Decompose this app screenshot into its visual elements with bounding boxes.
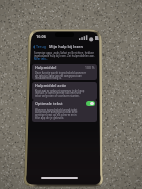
staticText: 16:06 bbox=[36, 34, 46, 39]
staticText: Wanneer ingeschakeld wordt tekst bbox=[35, 108, 78, 111]
staticText: de tekst in Safari wordt aangepast aan bbox=[35, 74, 82, 77]
staticText: Deze functie wordt ingeschakeld wanneer bbox=[35, 71, 87, 74]
staticText: automatisch aangepast zodat deze bbox=[35, 110, 78, 113]
staticText: Mijn hulp bij lezen bbox=[49, 44, 83, 49]
staticText: Kiest wat er gebeurt wanneer je de knop bbox=[35, 89, 85, 92]
staticText: indrukt. Je kunt hiermee ook heel snel bbox=[35, 91, 82, 94]
staticText: Optimale tekst bbox=[35, 101, 63, 106]
staticText: Sommige apps, zoals Safari en Berichten,… bbox=[34, 51, 94, 54]
button[interactable] bbox=[32, 64, 97, 80]
staticText: ingebouwde hulp bij lezen. Zet hulpmidde… bbox=[34, 54, 95, 57]
staticText: Hulpmiddel bbox=[35, 65, 57, 70]
staticText: elke app die je gebruikt. bbox=[35, 116, 65, 119]
button[interactable] bbox=[32, 82, 97, 100]
button[interactable]: Optimale tekst aan/uit bbox=[86, 101, 95, 106]
button[interactable] bbox=[32, 100, 97, 122]
button[interactable]: Terug bbox=[31, 43, 48, 50]
staticText: 100 % bbox=[85, 65, 95, 70]
staticText: prettiger leest op elk scherm en in bbox=[35, 113, 77, 116]
staticText: leesbaarheid nodig is. bbox=[35, 76, 62, 79]
staticText: Meer info… bbox=[34, 57, 48, 60]
staticText: Terug bbox=[36, 44, 46, 49]
staticText: Hulpmiddel actie bbox=[35, 83, 67, 88]
staticText: tekst vergroten of voorlezen starten. bbox=[35, 94, 80, 97]
